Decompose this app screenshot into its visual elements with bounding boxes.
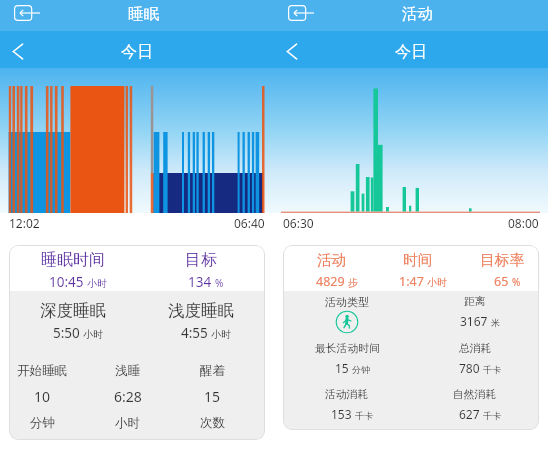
staticText: 开始睡眠	[17, 363, 67, 379]
button[interactable]: 最长活动时间	[283, 338, 411, 384]
staticText: 10	[34, 387, 51, 406]
button[interactable]: 浅睡	[85, 355, 170, 440]
staticText: 今日	[121, 42, 153, 62]
staticText: 浅度睡眠	[168, 300, 234, 321]
staticText: 15	[335, 360, 349, 376]
button[interactable]: Back	[12, 43, 24, 60]
staticText: 780	[459, 360, 480, 376]
staticText: 活动	[317, 251, 347, 270]
staticText: 1:47	[399, 273, 424, 290]
button[interactable]: 深度睡眠	[9, 291, 137, 355]
staticText: 5:50	[53, 324, 80, 342]
staticText: 4829	[316, 273, 345, 290]
button[interactable]: 时间	[375, 245, 460, 291]
staticText: 步	[348, 276, 358, 289]
staticText: 最长活动时间	[315, 342, 380, 356]
staticText: 自然消耗	[453, 388, 497, 402]
staticText: 小时	[211, 328, 231, 341]
staticText: 睡眠时间	[41, 250, 105, 270]
staticText: 米	[491, 317, 500, 328]
other: Walking	[335, 310, 359, 334]
staticText: 深度睡眠	[40, 300, 106, 321]
button[interactable]: 浅度睡眠	[137, 291, 265, 355]
staticText: 65	[494, 273, 509, 290]
staticText: %	[215, 276, 224, 290]
staticText: 06:30	[283, 215, 314, 231]
staticText: 小时	[427, 276, 447, 289]
staticText: 距离	[464, 295, 486, 309]
staticText: 06:40	[234, 215, 265, 231]
button[interactable]: 活动	[289, 245, 375, 291]
staticText: 活动类型	[325, 295, 369, 309]
staticText: 睡眠	[128, 4, 159, 24]
staticText: 分钟	[30, 415, 55, 431]
staticText: %	[512, 275, 521, 289]
button[interactable]: 睡眠时间	[9, 245, 137, 291]
staticText: 12:02	[9, 215, 40, 231]
button[interactable]: 自然消耗	[411, 384, 539, 430]
staticText: 活动	[402, 4, 433, 24]
staticText: 15	[204, 387, 221, 406]
staticText: 千卡	[483, 410, 501, 421]
staticText: 目标	[185, 250, 217, 270]
staticText: 次数	[200, 415, 225, 431]
staticText: 153	[331, 406, 352, 422]
button[interactable]: Exit	[288, 5, 314, 21]
staticText: 浅睡	[115, 363, 140, 379]
button[interactable]: Back	[286, 43, 298, 60]
staticText: 3167	[460, 313, 488, 329]
staticText: 4:55	[181, 324, 208, 342]
button[interactable]: 目标率	[460, 245, 539, 291]
button[interactable]: 距离	[411, 291, 539, 338]
staticText: 小时	[83, 328, 103, 341]
staticText: 小时	[115, 415, 140, 431]
staticText: 时间	[403, 251, 433, 270]
staticText: 134	[188, 273, 212, 291]
staticText: 10:45	[49, 273, 84, 291]
button[interactable]: 醒着	[170, 355, 255, 440]
staticText: 千卡	[355, 410, 373, 421]
staticText: 千卡	[483, 364, 501, 375]
button[interactable]: 开始睡眠	[9, 355, 85, 440]
button[interactable]: 总消耗	[411, 338, 539, 384]
staticText: 目标率	[480, 251, 525, 270]
staticText: 小时	[87, 277, 107, 290]
button[interactable]: 活动消耗	[283, 384, 411, 430]
staticText: 627	[459, 406, 480, 422]
button[interactable]: Exit	[14, 5, 40, 21]
staticText: 活动消耗	[325, 388, 369, 402]
staticText: 6:28	[114, 387, 142, 406]
staticText: 总消耗	[459, 342, 492, 356]
staticText: 08:00	[508, 215, 539, 231]
button[interactable]: 目标	[137, 245, 265, 291]
staticText: 今日	[395, 42, 427, 62]
button[interactable]: 活动类型	[283, 291, 411, 338]
staticText: 醒着	[200, 363, 225, 379]
staticText: 分钟	[352, 364, 370, 375]
